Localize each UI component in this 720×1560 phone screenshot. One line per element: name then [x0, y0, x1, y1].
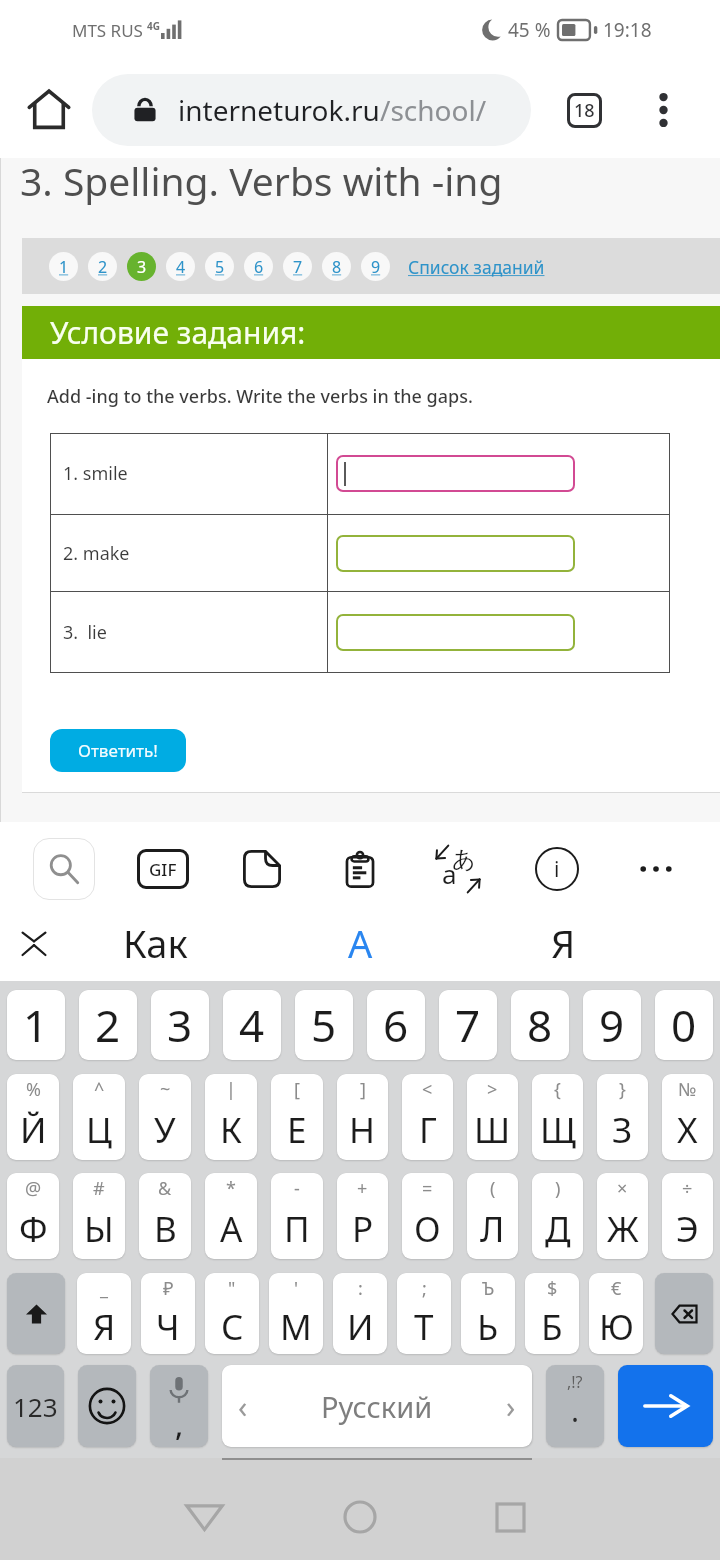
button[interactable]: <: [402, 1074, 453, 1160]
staticText: №: [678, 1077, 697, 1102]
button[interactable]: &: [139, 1173, 191, 1259]
button[interactable]: Я: [483, 904, 643, 981]
button[interactable]: Ъ: [461, 1273, 515, 1354]
staticText: {: [554, 1077, 561, 1102]
button[interactable]: More options: [633, 82, 693, 138]
button[interactable]: ,!?: [546, 1365, 604, 1447]
button[interactable]: 1: [7, 990, 65, 1060]
button[interactable]: ): [532, 1173, 583, 1259]
button[interactable]: Как: [75, 904, 235, 981]
button[interactable]: ': [269, 1273, 323, 1354]
staticText: [: [294, 1077, 300, 1102]
staticText: あ: [452, 845, 476, 874]
button[interactable]: 4: [166, 252, 195, 281]
button[interactable]: [336, 614, 575, 651]
button[interactable]: -: [271, 1173, 323, 1259]
button[interactable]: 3: [127, 252, 156, 281]
button[interactable]: [618, 1365, 713, 1447]
button[interactable]: [336, 455, 575, 492]
button[interactable]: +: [337, 1173, 388, 1259]
button[interactable]: 5: [295, 990, 353, 1060]
button[interactable]: ;: [397, 1273, 451, 1354]
button[interactable]: 4: [223, 990, 281, 1060]
button[interactable]: *: [205, 1173, 257, 1259]
button[interactable]: More: [624, 838, 688, 900]
staticText: 45 %: [508, 17, 551, 43]
button[interactable]: 2: [88, 252, 117, 281]
button[interactable]: Stickers: [230, 838, 294, 900]
staticText: a: [442, 856, 457, 891]
button[interactable]: {: [532, 1074, 583, 1160]
button[interactable]: Русский: [222, 1365, 532, 1447]
button[interactable]: ÷: [662, 1173, 713, 1259]
button[interactable]: %: [7, 1074, 59, 1160]
button[interactable]: 5: [205, 252, 234, 281]
staticText: У: [154, 1106, 176, 1154]
button[interactable]: GIF: [131, 838, 195, 900]
button[interactable]: interneturok.ru: [92, 74, 531, 146]
button[interactable]: $: [525, 1273, 579, 1354]
button[interactable]: ": [205, 1273, 259, 1354]
button[interactable]: =: [402, 1173, 453, 1259]
button[interactable]: ,: [150, 1365, 208, 1447]
button[interactable]: 0: [655, 990, 713, 1060]
button[interactable]: #: [73, 1173, 125, 1259]
staticText: Я: [93, 1303, 116, 1351]
button[interactable]: 8: [511, 990, 569, 1060]
staticText: 3: [137, 256, 147, 278]
staticText: interneturok.ru: [178, 91, 380, 129]
staticText: ": [228, 1276, 236, 1301]
button[interactable]: Back: [164, 1477, 244, 1557]
button[interactable]: 8: [322, 252, 351, 281]
button[interactable]: [336, 535, 575, 572]
button[interactable]: Translate: [424, 836, 492, 902]
button[interactable]: ₽: [141, 1273, 195, 1354]
button[interactable]: 9: [361, 252, 390, 281]
button[interactable]: 123: [7, 1365, 64, 1447]
button[interactable]: [: [271, 1074, 323, 1160]
button[interactable]: 9: [583, 990, 641, 1060]
button[interactable]: _: [77, 1273, 131, 1354]
button[interactable]: }: [597, 1074, 648, 1160]
button[interactable]: A: [280, 904, 440, 981]
button[interactable]: :: [333, 1273, 387, 1354]
staticText: И: [347, 1303, 374, 1351]
button[interactable]: @: [7, 1173, 59, 1259]
button[interactable]: >: [467, 1074, 518, 1160]
button[interactable]: €: [589, 1273, 643, 1354]
button[interactable]: Clipboard: [328, 838, 392, 900]
button[interactable]: [78, 1365, 136, 1447]
staticText: А: [220, 1205, 243, 1253]
staticText: Ы: [84, 1205, 114, 1253]
button[interactable]: 2: [79, 990, 137, 1060]
staticText: Русский: [321, 1387, 433, 1426]
button[interactable]: 6: [244, 252, 273, 281]
button[interactable]: Recent apps: [470, 1477, 550, 1557]
button[interactable]: Info: [525, 838, 589, 900]
button[interactable]: 3: [151, 990, 209, 1060]
staticText: -: [294, 1176, 300, 1201]
staticText: М: [280, 1303, 312, 1351]
button[interactable]: Home: [16, 76, 82, 142]
button[interactable]: 7: [283, 252, 312, 281]
button[interactable]: Search: [33, 838, 95, 900]
button[interactable]: №: [662, 1074, 713, 1160]
button[interactable]: ~: [139, 1074, 191, 1160]
button[interactable]: [655, 1273, 713, 1354]
button[interactable]: 6: [367, 990, 425, 1060]
button[interactable]: Tabs: [554, 82, 614, 138]
button[interactable]: |: [205, 1074, 257, 1160]
button[interactable]: 7: [439, 990, 497, 1060]
staticText: 3. Spelling. Verbs with -ing: [20, 154, 503, 207]
button[interactable]: 1: [49, 252, 78, 281]
button[interactable]: Home: [320, 1477, 400, 1557]
button[interactable]: ×: [597, 1173, 648, 1259]
button[interactable]: Ответить!: [50, 729, 186, 772]
button[interactable]: Hide keyboard: [8, 904, 60, 981]
button[interactable]: ]: [337, 1074, 388, 1160]
button[interactable]: (: [467, 1173, 518, 1259]
button[interactable]: ^: [73, 1074, 125, 1160]
button[interactable]: [7, 1273, 65, 1354]
button[interactable]: Список заданий: [408, 255, 545, 279]
staticText: 123: [13, 1389, 58, 1424]
